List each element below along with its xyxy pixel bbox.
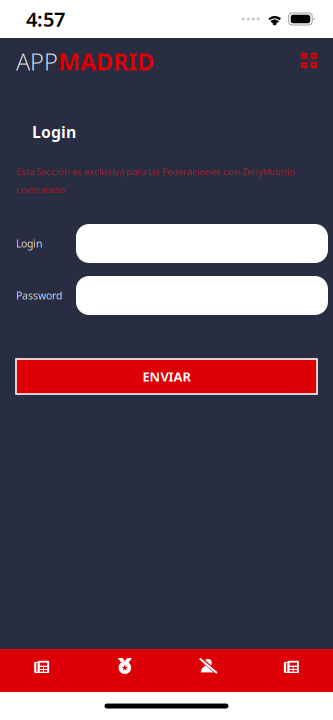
staticText: Login — [16, 236, 42, 251]
button[interactable]: Prensa — [250, 649, 333, 692]
button[interactable]: Cerrar sesión — [166, 649, 250, 692]
staticText: Password — [16, 288, 62, 303]
staticText: ENVIAR — [142, 368, 190, 385]
staticText: Esta Sección es exclusiva para las Feder… — [16, 165, 295, 196]
staticText: Login — [32, 121, 76, 143]
staticText: APP — [16, 45, 58, 77]
staticText: 4:57 — [26, 6, 65, 32]
button[interactable]: Noticias — [0, 649, 83, 692]
button[interactable]: Competiciones — [83, 649, 166, 692]
button[interactable]: ENVIAR — [16, 359, 317, 394]
staticText: MADRID — [58, 45, 154, 77]
button[interactable]: Menú — [293, 45, 325, 81]
